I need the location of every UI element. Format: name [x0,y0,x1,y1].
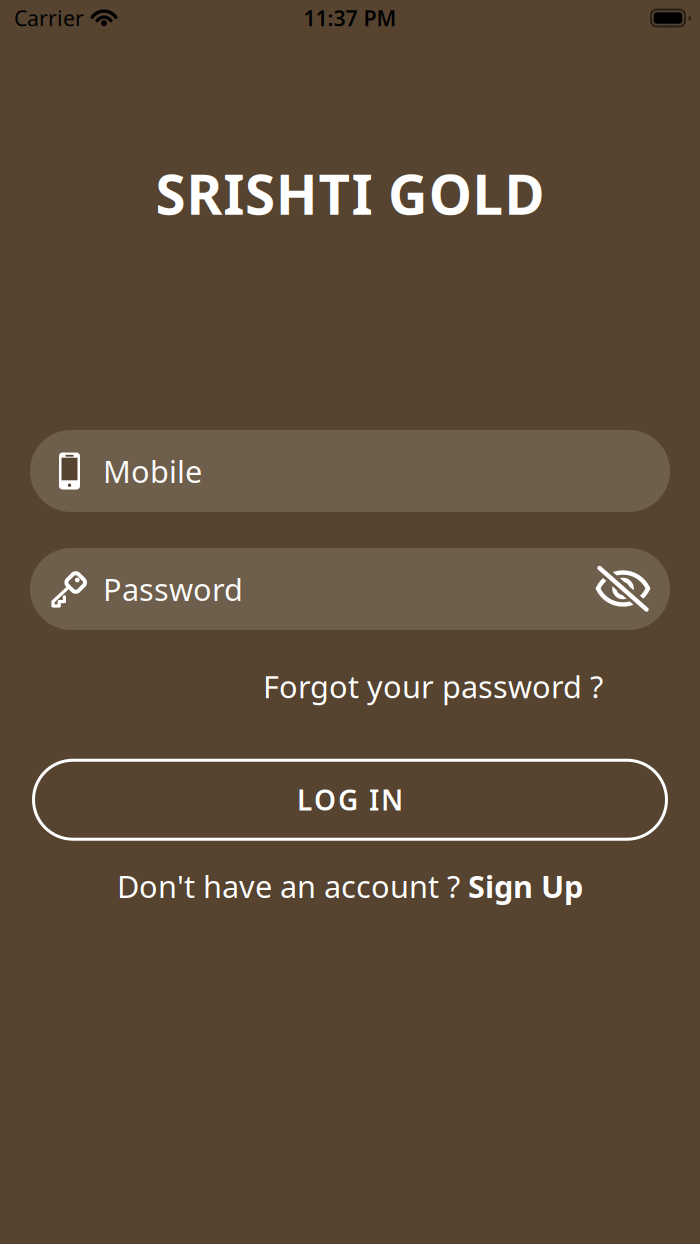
button[interactable]: Password [30,548,670,630]
staticText: Don't have an account ? Sign Up [117,866,583,906]
staticText: Password [103,569,243,609]
button[interactable]: LOG IN [32,759,668,841]
staticText: 11:37 PM [303,4,396,32]
staticText: Forgot your password ? [263,666,603,707]
staticText: Mobile [103,451,202,491]
button[interactable]: Forgot your password ? [263,666,603,707]
staticText: LOG IN [297,781,403,818]
staticText: SRISHTI GOLD [156,157,544,230]
button[interactable]: Mobile [30,430,670,512]
button[interactable]: Don't have an account ? Sign Up [117,866,583,906]
button[interactable]: Show password [596,565,650,612]
staticText: Carrier [14,4,84,32]
